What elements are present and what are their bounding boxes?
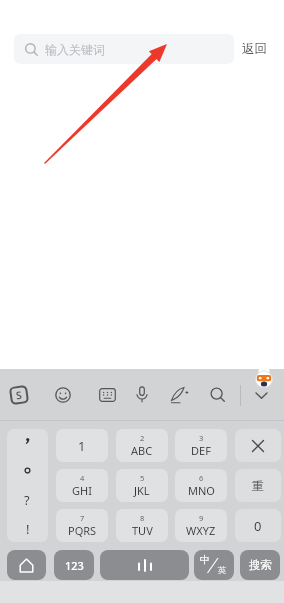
button[interactable] — [135, 386, 149, 404]
staticText: 0 — [254, 517, 262, 535]
staticText: 2 — [140, 433, 145, 443]
staticText: ! — [26, 520, 30, 538]
button[interactable]: 8 — [116, 509, 168, 542]
button[interactable]: 1 — [56, 429, 108, 462]
button[interactable]: 中 — [194, 550, 234, 580]
button[interactable]: 2 — [116, 429, 168, 462]
button[interactable]: 7 — [56, 509, 108, 542]
staticText: 输入关键词 — [45, 42, 105, 57]
button[interactable] — [55, 387, 71, 403]
staticText: 8 — [140, 513, 145, 523]
button[interactable] — [99, 388, 116, 402]
staticText: TUV — [132, 523, 153, 538]
staticText: PQRS — [68, 523, 97, 538]
staticText: 重 — [252, 478, 264, 493]
staticText: 4 — [80, 473, 85, 483]
staticText: 5 — [140, 473, 145, 483]
button[interactable]: 搜索 — [240, 550, 280, 580]
staticText: 6 — [199, 473, 204, 483]
button[interactable] — [235, 429, 281, 462]
staticText: JKL — [134, 483, 150, 498]
button[interactable]: ? — [7, 429, 48, 542]
staticText: ? — [24, 491, 30, 509]
staticText: DEF — [191, 443, 211, 458]
button[interactable] — [255, 392, 268, 400]
button[interactable] — [7, 550, 46, 580]
staticText: S — [15, 388, 23, 402]
staticText: MNO — [188, 483, 215, 498]
button[interactable] — [210, 387, 226, 403]
staticText: 1 — [78, 437, 86, 455]
staticText: 9 — [199, 513, 204, 523]
staticText: 英 — [218, 565, 227, 576]
button[interactable]: 输入关键词 — [14, 34, 234, 64]
staticText: 7 — [80, 513, 85, 523]
button[interactable] — [100, 550, 189, 580]
button[interactable]: 0 — [235, 509, 281, 542]
staticText: 3 — [199, 433, 204, 443]
button[interactable]: 返回 — [238, 34, 271, 64]
staticText: ABC — [131, 443, 153, 458]
button[interactable]: 重 — [235, 469, 281, 502]
button[interactable]: 4 — [56, 469, 108, 502]
button[interactable]: 5 — [116, 469, 168, 502]
button[interactable]: S — [9, 385, 29, 405]
button[interactable]: 9 — [175, 509, 227, 542]
staticText: GHI — [72, 483, 92, 498]
staticText: 中 — [200, 553, 210, 566]
button[interactable]: 123 — [54, 550, 94, 580]
staticText: 123 — [65, 558, 84, 573]
staticText: WXYZ — [186, 523, 216, 538]
staticText: 返回 — [242, 41, 267, 57]
button[interactable] — [170, 386, 189, 404]
button[interactable]: 6 — [175, 469, 227, 502]
staticText: 搜索 — [249, 558, 272, 572]
button[interactable]: 3 — [175, 429, 227, 462]
